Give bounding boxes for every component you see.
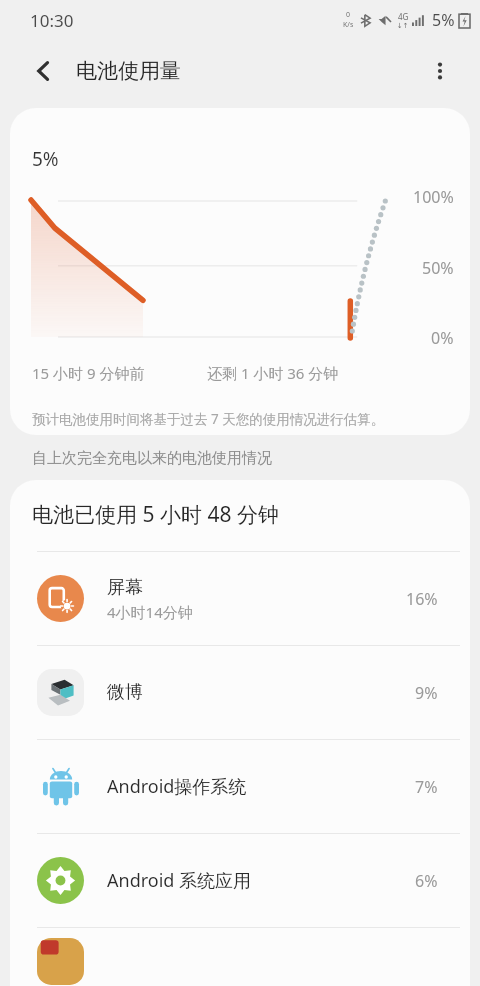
staticText: 16% <box>406 588 438 610</box>
staticText: 0 <box>346 10 351 20</box>
staticText: 10:30 <box>30 9 74 32</box>
button[interactable]: Android 系统应用 <box>10 834 470 927</box>
staticText: 还剩 1 小时 36 分钟 <box>207 363 339 383</box>
staticText: Android操作系统 <box>107 774 247 799</box>
staticText: 5% <box>432 9 455 31</box>
button[interactable]: Back <box>22 49 66 93</box>
staticText: 7% <box>415 776 438 798</box>
staticText: 6% <box>415 870 438 892</box>
staticText: 4小时14分钟 <box>107 602 193 622</box>
staticText: 15 小时 9 分钟前 <box>32 363 145 383</box>
staticText: 电池已使用 5 小时 48 分钟 <box>32 500 279 529</box>
staticText: 9% <box>415 682 438 704</box>
button[interactable] <box>10 928 470 986</box>
staticText: 屏幕 <box>107 576 143 599</box>
button[interactable]: Android操作系统 <box>10 740 470 833</box>
staticText: 5% <box>32 146 59 172</box>
staticText: 50% <box>422 257 454 279</box>
staticText: 100% <box>413 186 454 208</box>
staticText: ↓↑ <box>397 22 409 30</box>
staticText: 0% <box>431 327 454 349</box>
button[interactable]: More options <box>418 49 462 93</box>
staticText: K/s <box>343 20 354 30</box>
button[interactable]: 微博 <box>10 646 470 739</box>
staticText: 电池使用量 <box>76 58 181 84</box>
staticText: 4G <box>398 11 409 22</box>
button[interactable]: 屏幕 <box>10 552 470 645</box>
staticText: 自上次完全充电以来的电池使用情况 <box>32 449 272 468</box>
staticText: 预计电池使用时间将基于过去 7 天您的使用情况进行估算。 <box>32 410 385 428</box>
staticText: Android 系统应用 <box>107 868 252 893</box>
staticText: 微博 <box>107 681 143 704</box>
